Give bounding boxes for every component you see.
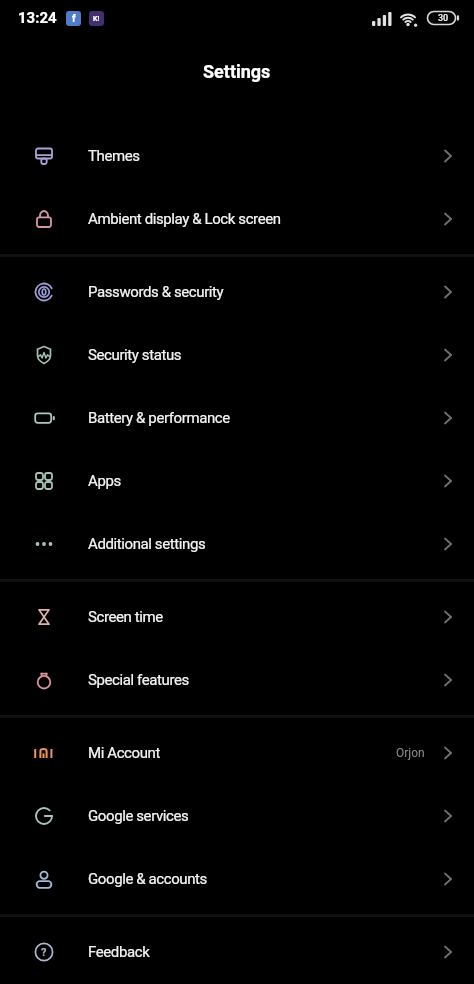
button[interactable]: Additional settings [0, 512, 474, 575]
staticText: Additional settings [88, 535, 206, 553]
staticText: 30 [428, 13, 458, 24]
button[interactable]: Mi Account [0, 721, 474, 784]
button[interactable]: Security status [0, 323, 474, 386]
button[interactable]: Passwords & security [0, 260, 474, 323]
staticText: Feedback [88, 943, 150, 961]
staticText: f [72, 13, 76, 25]
button[interactable]: Themes [0, 124, 474, 187]
button[interactable]: Special features [0, 648, 474, 711]
button[interactable]: Google & accounts [0, 847, 474, 910]
staticText: Google services [88, 807, 189, 825]
staticText: Settings [203, 61, 271, 82]
staticText: K! [93, 15, 100, 23]
button[interactable]: Battery & performance [0, 386, 474, 449]
staticText: Security status [88, 346, 182, 364]
staticText: Ambient display & Lock screen [88, 210, 281, 228]
staticText: Screen time [88, 608, 163, 626]
staticText: Passwords & security [88, 283, 224, 301]
staticText: Special features [88, 671, 189, 689]
button[interactable]: ? [0, 920, 474, 983]
button[interactable]: Ambient display & Lock screen [0, 187, 474, 250]
staticText: Apps [88, 472, 121, 490]
staticText: Battery & performance [88, 409, 230, 427]
staticText: ? [41, 946, 47, 959]
button[interactable]: Screen time [0, 585, 474, 648]
staticText: 13:24 [18, 9, 57, 27]
button[interactable]: Apps [0, 449, 474, 512]
staticText: Google & accounts [88, 870, 207, 888]
button[interactable]: Google services [0, 784, 474, 847]
staticText: Mi Account [88, 744, 160, 762]
staticText: Themes [88, 147, 140, 165]
staticText: Orjon [396, 746, 425, 760]
